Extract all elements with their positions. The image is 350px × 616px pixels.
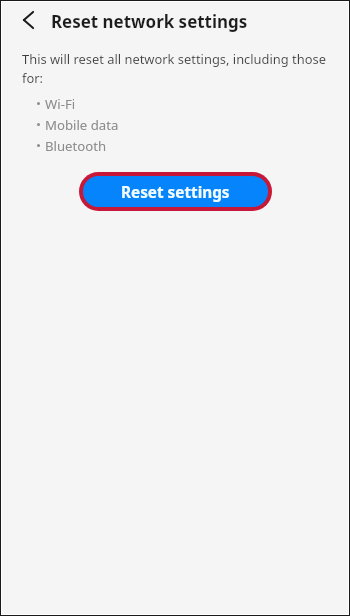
staticText: Mobile data	[45, 116, 119, 134]
button[interactable]: Navigate back	[12, 4, 44, 36]
staticText: Bluetooth	[45, 137, 107, 155]
staticText: This will reset all network settings, in…	[22, 50, 336, 87]
staticText: Reset network settings	[51, 10, 248, 33]
button[interactable]: Reset settings	[79, 172, 272, 211]
staticText: Reset settings	[121, 182, 230, 203]
staticText: Wi-Fi	[45, 95, 76, 113]
